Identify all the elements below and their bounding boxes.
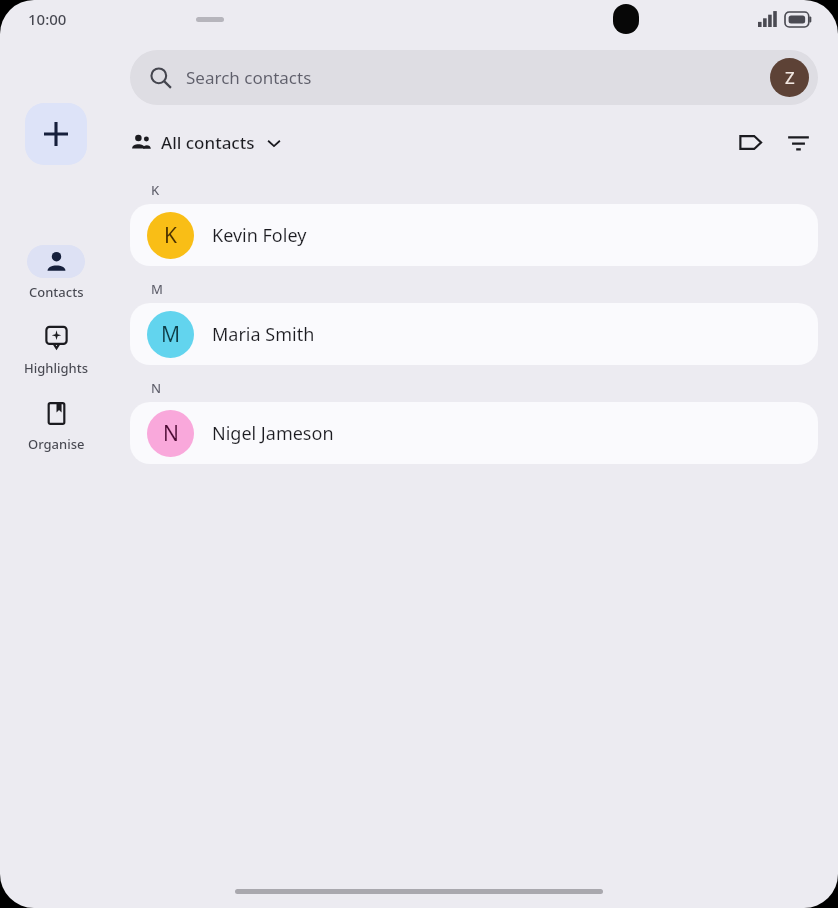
staticText: Highlights <box>24 359 88 377</box>
staticText: Organise <box>28 435 85 453</box>
staticText: M <box>151 280 163 298</box>
button[interactable]: Account <box>770 58 809 97</box>
button[interactable]: Sort and filter <box>778 125 818 159</box>
staticText: Z <box>785 66 795 89</box>
button[interactable]: M <box>130 303 818 365</box>
staticText: N <box>163 419 179 448</box>
staticText: Search contacts <box>186 66 312 89</box>
button[interactable]: N <box>130 402 818 464</box>
button[interactable]: All contacts <box>130 131 285 154</box>
staticText: M <box>161 320 181 349</box>
button[interactable]: Labels <box>730 125 770 159</box>
button[interactable]: Create contact <box>25 103 87 165</box>
staticText: Contacts <box>29 283 84 301</box>
staticText: Kevin Foley <box>212 223 307 248</box>
button[interactable]: Contacts <box>27 245 85 301</box>
staticText: K <box>164 221 177 250</box>
button[interactable]: Highlights <box>24 321 88 377</box>
staticText: Nigel Jameson <box>212 421 334 446</box>
button[interactable]: Search contacts <box>130 50 818 105</box>
staticText: 10:00 <box>28 9 67 29</box>
staticText: N <box>151 379 162 397</box>
staticText: All contacts <box>161 131 255 154</box>
button[interactable]: Organise <box>27 397 85 453</box>
button[interactable]: K <box>130 204 818 266</box>
staticText: Maria Smith <box>212 322 315 347</box>
staticText: K <box>151 181 160 199</box>
